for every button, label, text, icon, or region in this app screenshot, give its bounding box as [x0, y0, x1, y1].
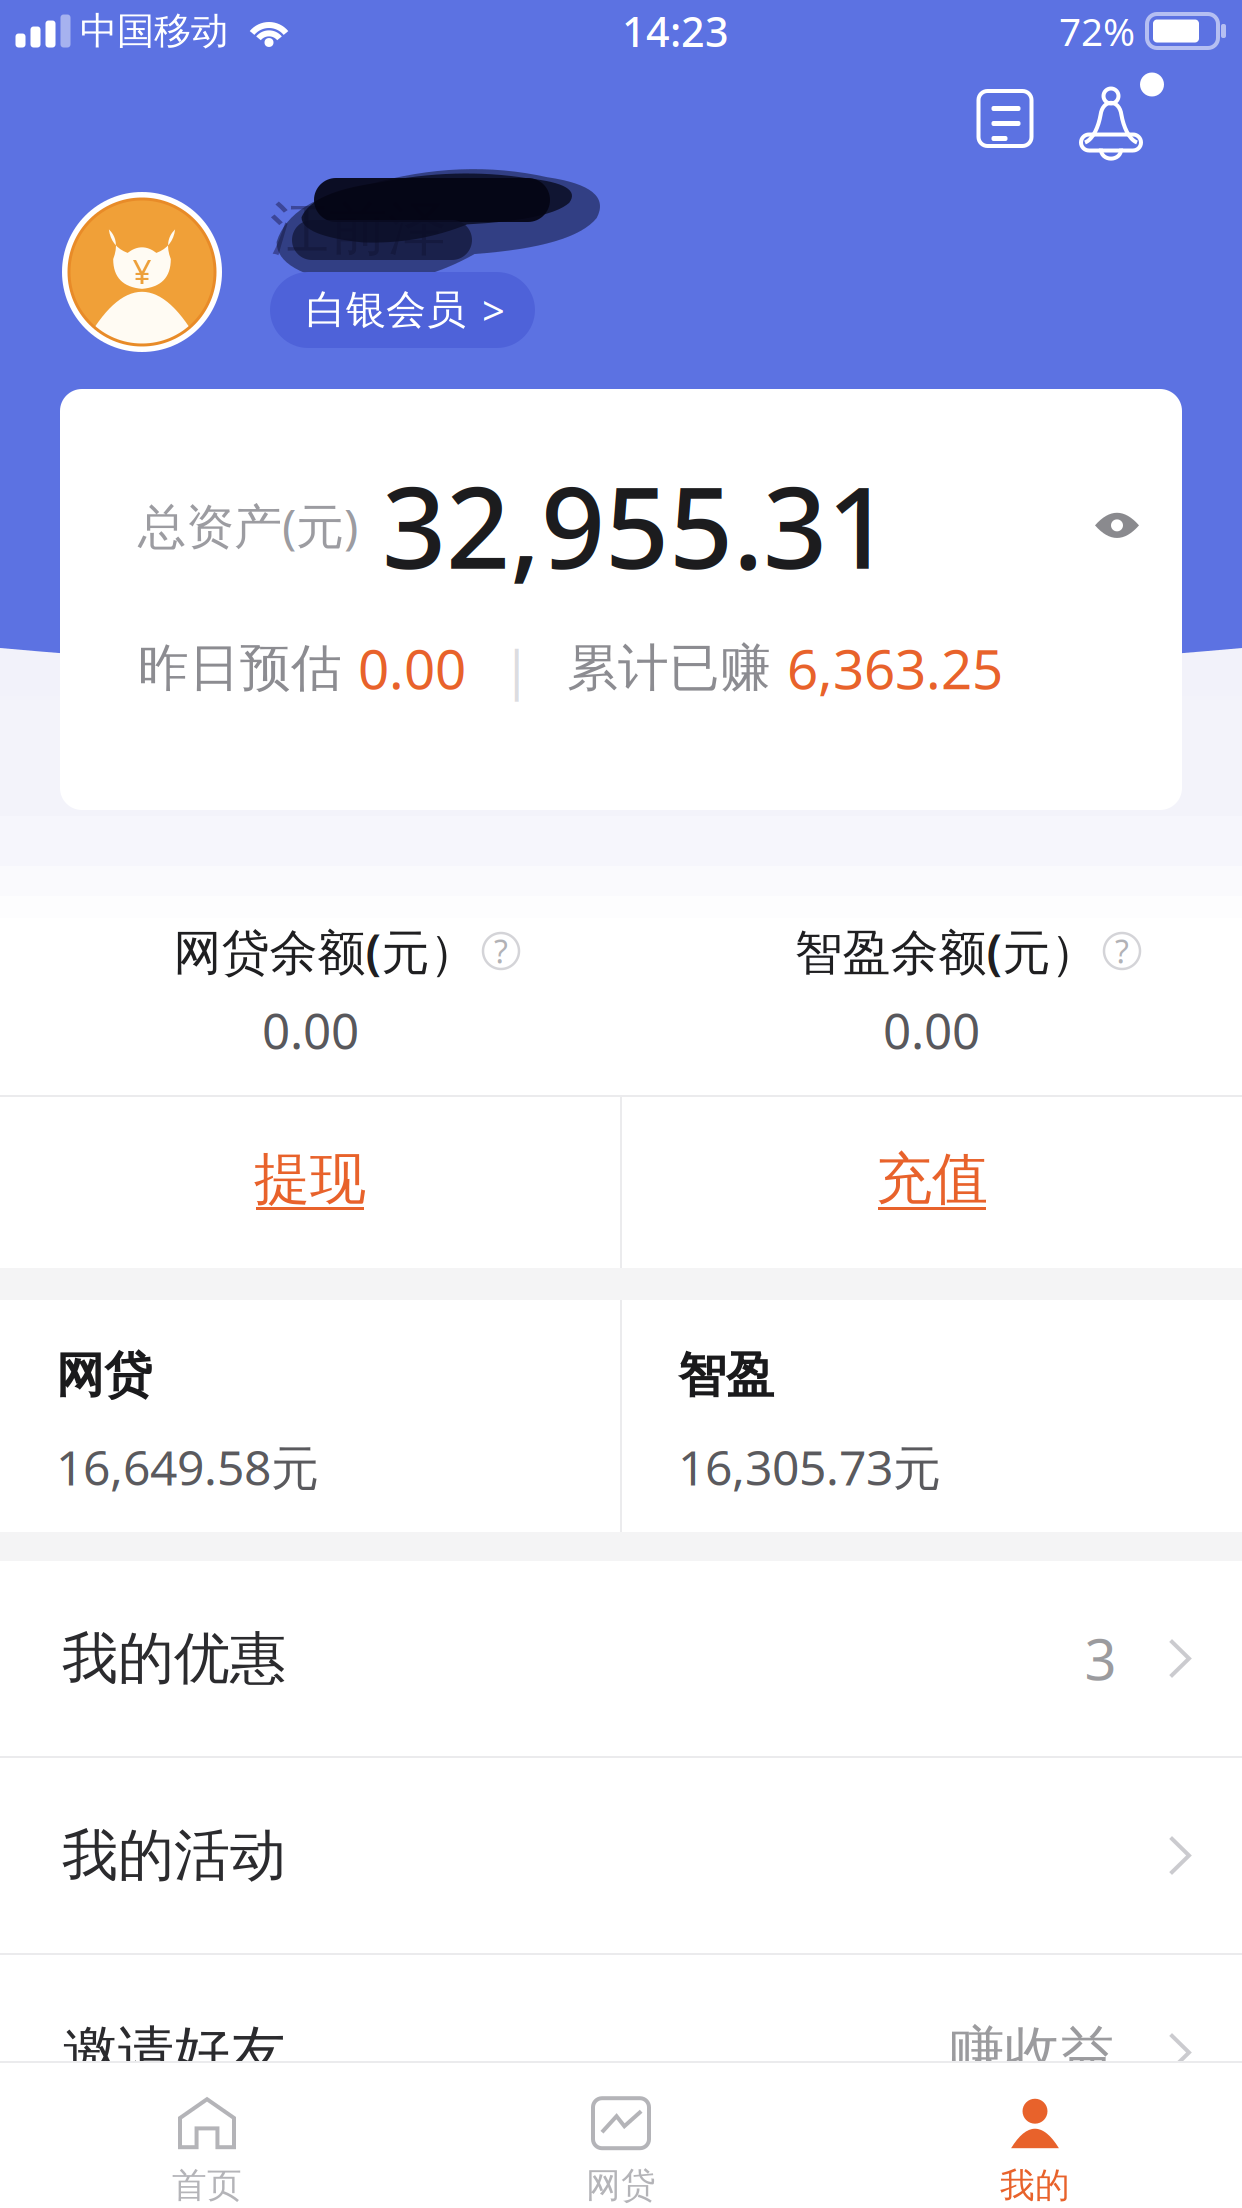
button[interactable]: 提现 — [0, 1097, 620, 1268]
staticText: 充值 — [876, 1145, 988, 1213]
staticText: 我的优惠 — [62, 1624, 286, 1693]
staticText: 6,363.25 — [787, 632, 1003, 704]
button[interactable]: 充值 — [622, 1097, 1242, 1268]
staticText: 我的 — [1000, 2164, 1070, 2207]
button[interactable]: 我的活动 — [0, 1758, 1242, 1953]
staticText: 总资产(元) — [138, 493, 358, 557]
staticText: > — [482, 283, 505, 336]
button[interactable]: 我的 — [828, 2057, 1242, 2208]
staticText: 首页 — [172, 2164, 242, 2207]
staticText: 赚收益 — [949, 2018, 1117, 2087]
staticText: 江前泽 — [270, 193, 447, 265]
button[interactable]: 我的优惠 — [0, 1561, 1242, 1756]
staticText: 3 — [1085, 1621, 1117, 1696]
button[interactable]: Hide balance — [1092, 509, 1142, 541]
staticText: 白银会员 — [306, 285, 466, 334]
staticText: 网贷余额(元） — [173, 919, 477, 983]
staticText: 中国移动 — [80, 8, 228, 54]
staticText: 智盈 — [678, 1346, 774, 1405]
staticText: 我的活动 — [62, 1821, 286, 1890]
staticText: 32,955.31 — [382, 451, 891, 600]
staticText: ? — [1115, 930, 1129, 972]
staticText: 16,305.73元 — [678, 1435, 941, 1499]
button[interactable]: Statements — [960, 73, 1050, 163]
staticText: ¥ — [132, 249, 151, 293]
staticText: 0.00 — [358, 632, 466, 704]
staticText: ? — [494, 930, 508, 972]
staticText: 72% — [1059, 5, 1135, 57]
staticText: 提现 — [254, 1145, 366, 1213]
button[interactable]: Notifications — [1072, 72, 1170, 164]
staticText: 0.00 — [262, 997, 359, 1062]
staticText: 16,649.58元 — [56, 1435, 319, 1499]
staticText: 昨日预估 — [138, 637, 342, 699]
staticText: 智盈余额(元） — [794, 919, 1098, 983]
staticText: | — [502, 633, 531, 703]
button[interactable]: 网贷 — [414, 2057, 828, 2208]
button[interactable]: 邀请好友 — [0, 1955, 1242, 2150]
staticText: 邀请好友 — [62, 2018, 286, 2087]
staticText: 累计已赚 — [567, 637, 771, 699]
staticText: 网贷 — [56, 1346, 152, 1405]
staticText: 网贷 — [586, 2164, 656, 2207]
staticText: 0.00 — [883, 997, 980, 1062]
button[interactable]: 白银会员 — [270, 272, 535, 348]
staticText: 14:23 — [622, 4, 729, 58]
button[interactable]: 首页 — [0, 2057, 414, 2208]
